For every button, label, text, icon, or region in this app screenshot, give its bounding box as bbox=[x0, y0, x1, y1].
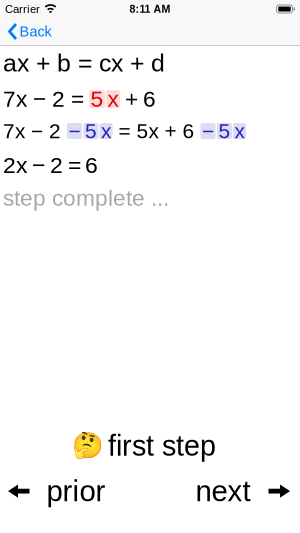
staticText: 5 bbox=[85, 119, 97, 143]
staticText: = 5x + 6 bbox=[112, 119, 200, 143]
button[interactable]: 🤔 bbox=[72, 430, 228, 462]
staticText: x bbox=[107, 86, 118, 112]
staticText: 5 bbox=[218, 119, 230, 143]
button[interactable]: next bbox=[195, 475, 290, 507]
staticText: 8:11 AM bbox=[129, 3, 170, 15]
staticText: Back bbox=[19, 23, 51, 40]
staticText: − bbox=[68, 119, 80, 143]
staticText: − bbox=[202, 119, 214, 143]
staticText: x bbox=[101, 119, 111, 143]
staticText: ax + b = cx + d bbox=[3, 49, 165, 77]
button[interactable]: prior bbox=[8, 475, 105, 507]
staticText: 7x − 2 = bbox=[3, 86, 89, 112]
staticText: Carrier bbox=[5, 3, 40, 15]
staticText: + 6 bbox=[120, 86, 156, 112]
staticText: prior bbox=[46, 475, 105, 507]
staticText: 🤔 bbox=[72, 431, 104, 460]
staticText: first step bbox=[108, 430, 216, 462]
staticText: 2x − 2 = 6 bbox=[3, 152, 98, 178]
staticText: 5 bbox=[90, 86, 103, 112]
staticText: next bbox=[195, 475, 250, 507]
staticText: 7x − 2 bbox=[3, 119, 67, 143]
button[interactable]: Back bbox=[0, 23, 51, 40]
staticText: x bbox=[234, 119, 244, 143]
staticText: step complete ... bbox=[3, 185, 169, 211]
